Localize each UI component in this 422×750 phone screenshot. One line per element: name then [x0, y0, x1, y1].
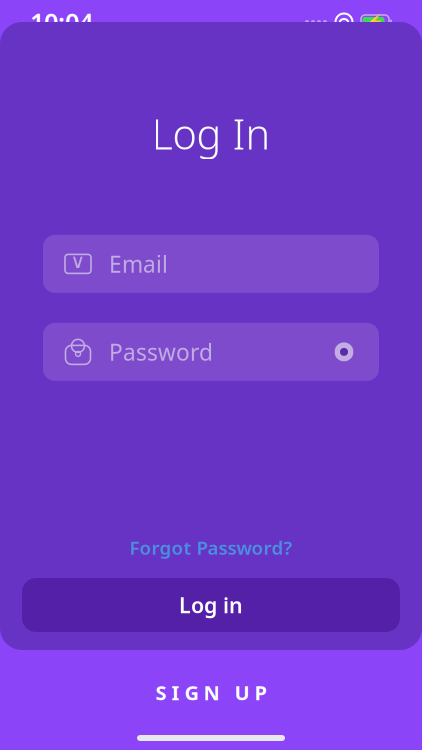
- button[interactable]: S I G N U P: [131, 671, 290, 714]
- staticText: Password: [109, 337, 213, 367]
- staticText: ⚡: [366, 14, 384, 30]
- button[interactable]: Forgot Password?: [113, 529, 308, 566]
- staticText: Log in: [179, 591, 243, 619]
- staticText: S I G N U P: [155, 679, 266, 706]
- staticText: ∨: [70, 250, 85, 273]
- button[interactable]: Log in: [22, 578, 400, 632]
- staticText: Log In: [151, 106, 270, 161]
- button[interactable]: Show password: [327, 337, 379, 367]
- staticText: Email: [109, 249, 168, 279]
- staticText: Forgot Password?: [129, 535, 292, 560]
- staticText: 10:04: [30, 5, 93, 39]
